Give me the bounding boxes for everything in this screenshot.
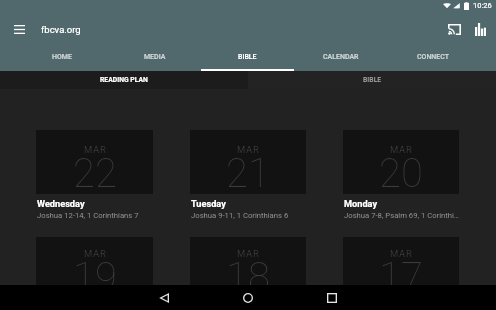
staticText: Joshua 12-14, 1 Corinthians 7 (37, 211, 139, 220)
staticText: MAR (84, 248, 107, 259)
button[interactable]: MAR (343, 237, 459, 285)
button[interactable]: MAR (190, 237, 306, 285)
staticText: 20 (379, 150, 423, 197)
button[interactable]: Back (148, 285, 180, 310)
staticText: 18 (226, 254, 270, 291)
staticText: 21 (226, 150, 270, 197)
button[interactable]: Home (232, 285, 264, 310)
staticText: MAR (237, 144, 260, 155)
staticText: Monday (344, 198, 378, 209)
button[interactable]: HOME (16, 47, 108, 71)
staticText: MAR (390, 144, 413, 155)
button[interactable]: BIBLE (248, 71, 496, 89)
button[interactable]: MAR (343, 130, 459, 218)
button[interactable]: MEDIA (108, 47, 201, 71)
button[interactable]: Recent apps (316, 285, 348, 310)
staticText: Wednesday (37, 198, 85, 209)
button[interactable]: MAR (36, 130, 153, 218)
staticText: 19 (73, 254, 117, 291)
button[interactable]: MAR (36, 237, 153, 285)
staticText: 10:26 (473, 1, 492, 10)
button[interactable]: Statistics (465, 13, 496, 45)
button[interactable]: BIBLE (201, 47, 294, 71)
staticText: MAR (84, 144, 107, 155)
staticText: MAR (237, 248, 260, 259)
staticText: BIBLE (238, 53, 257, 61)
button[interactable]: CONNECT (387, 47, 480, 71)
staticText: Joshua 9-11, 1 Corinthians 6 (191, 211, 289, 220)
staticText: Joshua 7-8, Psalm 69, 1 Corinthians 5 (344, 211, 460, 220)
button[interactable]: MAR (190, 130, 306, 218)
staticText: CALENDAR (323, 53, 359, 61)
staticText: READING PLAN (100, 76, 148, 84)
staticText: 22 (73, 150, 117, 197)
button[interactable]: CALENDAR (294, 47, 387, 71)
staticText: BIBLE (363, 76, 382, 84)
staticText: HOME (52, 53, 72, 61)
staticText: MAR (390, 248, 413, 259)
button[interactable]: Cast screen (444, 13, 465, 45)
button[interactable]: Menu (3, 13, 35, 45)
button[interactable]: READING PLAN (0, 71, 248, 89)
staticText: CONNECT (417, 53, 450, 61)
staticText: fbcva.org (41, 24, 81, 35)
staticText: MEDIA (144, 53, 166, 61)
staticText: 17 (379, 254, 423, 291)
staticText: Tuesday (191, 198, 226, 209)
